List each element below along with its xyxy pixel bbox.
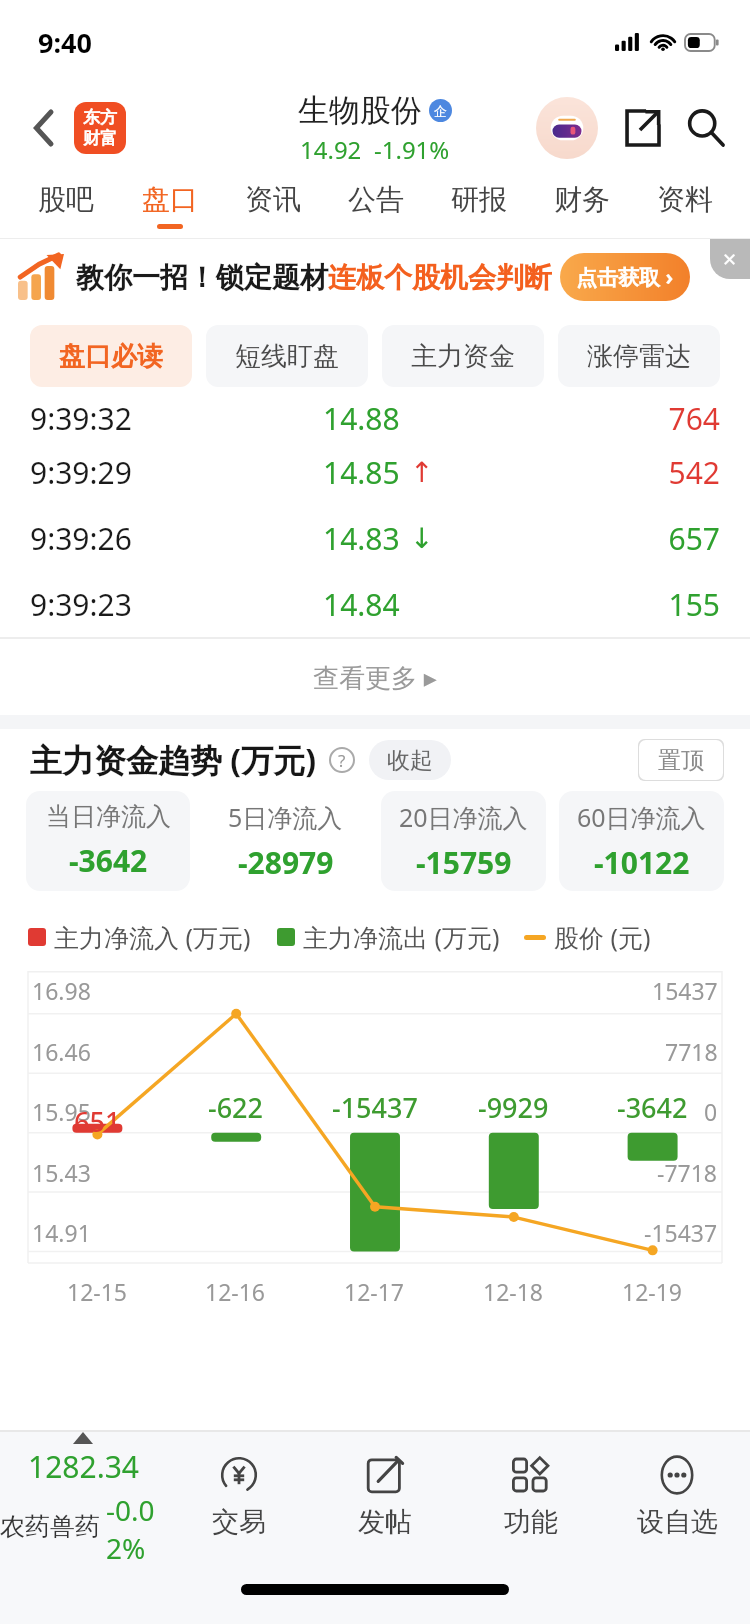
- staticText: 主力资金: [411, 340, 515, 373]
- button[interactable]: 研报: [427, 172, 530, 239]
- staticText: ↑: [410, 456, 428, 489]
- button[interactable]: 发帖: [312, 1432, 458, 1562]
- button[interactable]: 资料: [633, 172, 736, 239]
- button[interactable]: 点击获取 ›: [560, 253, 690, 301]
- staticText: 60日净流入: [577, 800, 706, 834]
- staticText: 发帖: [358, 1505, 412, 1539]
- button[interactable]: 置顶: [638, 739, 724, 781]
- button[interactable]: 交易: [166, 1432, 312, 1562]
- staticText: 研报: [451, 182, 507, 217]
- staticText: 155: [490, 584, 720, 625]
- button[interactable]: 当日净流入: [26, 791, 190, 891]
- staticText: -1.91%: [374, 133, 450, 166]
- staticText: ✕: [722, 249, 738, 270]
- staticText: 东方: [83, 107, 117, 128]
- staticText: 14.92: [300, 133, 362, 166]
- button[interactable]: 教你一招！锁定题材: [18, 239, 736, 315]
- button[interactable]: 资讯: [221, 172, 324, 239]
- button[interactable]: 主力资金: [382, 325, 544, 387]
- staticText: -622: [208, 1089, 263, 1126]
- button[interactable]: 盘口必读: [30, 325, 192, 387]
- staticText: 当日净流入: [46, 801, 171, 832]
- staticText: 股价 (元): [554, 920, 651, 954]
- staticText: -0.02%: [106, 1491, 166, 1562]
- staticText: -15437: [332, 1089, 418, 1126]
- staticText: 12-18: [483, 1276, 544, 1307]
- staticText: 短线盯盘: [235, 340, 339, 373]
- staticText: 14.91: [32, 1217, 91, 1248]
- staticText: 交易: [212, 1505, 266, 1539]
- staticText: 涨停雷达: [587, 340, 691, 373]
- staticText: -10122: [594, 842, 690, 883]
- staticText: -3642: [69, 840, 148, 881]
- staticText: -28979: [238, 842, 334, 883]
- staticText: -7718: [657, 1157, 718, 1188]
- staticText: ?: [338, 749, 346, 772]
- staticText: 9:39:26: [30, 518, 260, 559]
- button[interactable]: 60日净流入: [559, 791, 724, 891]
- button[interactable]: 功能: [458, 1432, 604, 1562]
- staticText: 9:40: [38, 24, 92, 61]
- button[interactable]: Back: [22, 106, 66, 150]
- button[interactable]: 查看更多 ▸: [0, 639, 750, 715]
- button[interactable]: Help: [327, 745, 357, 775]
- button[interactable]: 1282.34: [0, 1432, 166, 1562]
- button[interactable]: AI assistant: [536, 97, 598, 159]
- button[interactable]: 9:39:26: [0, 505, 750, 571]
- staticText: 企: [434, 103, 447, 119]
- staticText: 15.95: [32, 1096, 91, 1127]
- staticText: 14.84: [323, 584, 400, 625]
- staticText: 12-17: [344, 1276, 405, 1307]
- staticText: -3642: [617, 1089, 688, 1126]
- staticText: 公告: [348, 182, 404, 217]
- staticText: 生物股份: [298, 91, 422, 130]
- staticText: ↓: [410, 522, 428, 555]
- button[interactable]: 公告: [324, 172, 427, 239]
- staticText: 主力净流入 (万元): [54, 920, 251, 954]
- staticText: 9:39:23: [30, 584, 260, 625]
- staticText: 16.46: [32, 1036, 91, 1067]
- button[interactable]: 收起: [369, 740, 451, 780]
- staticText: 股吧: [38, 182, 94, 217]
- staticText: 点击获取 ›: [576, 263, 674, 292]
- staticText: 财务: [554, 182, 610, 217]
- button[interactable]: 20日净流入: [381, 791, 546, 891]
- button[interactable]: Share: [616, 102, 668, 154]
- button[interactable]: 短线盯盘: [206, 325, 368, 387]
- button[interactable]: 东方财富: [74, 102, 126, 154]
- staticText: -9929: [478, 1089, 549, 1126]
- staticText: 盘口: [142, 182, 198, 217]
- staticText: 12-16: [205, 1276, 266, 1307]
- staticText: 收起: [387, 746, 433, 775]
- staticText: 设自选: [637, 1505, 718, 1539]
- button[interactable]: Close ad: [710, 239, 750, 279]
- button[interactable]: Search: [678, 100, 734, 156]
- button[interactable]: 设自选: [604, 1432, 750, 1562]
- staticText: 14.83: [323, 518, 400, 559]
- staticText: 主力净流出 (万元): [303, 920, 500, 954]
- button[interactable]: 财务: [530, 172, 633, 239]
- button[interactable]: 涨停雷达: [558, 325, 720, 387]
- staticText: 9:39:32: [30, 398, 260, 439]
- staticText: 9:39:29: [30, 452, 260, 493]
- button[interactable]: 5日净流入: [203, 791, 368, 891]
- button[interactable]: 股吧: [14, 172, 118, 239]
- staticText: 657: [490, 518, 720, 559]
- staticText: 7718: [665, 1036, 718, 1067]
- staticText: 财富: [83, 128, 117, 149]
- staticText: 连板个股机会判断: [328, 260, 552, 295]
- staticText: 资讯: [245, 182, 301, 217]
- button[interactable]: 9:39:32: [0, 397, 750, 439]
- staticText: 15.43: [32, 1157, 91, 1188]
- staticText: 教你一招！锁定题材: [76, 260, 328, 295]
- staticText: 12-15: [67, 1276, 128, 1307]
- button[interactable]: 盘口: [118, 172, 221, 239]
- staticText: 置顶: [658, 746, 704, 775]
- staticText: 盘口必读: [59, 340, 163, 373]
- staticText: 查看更多 ▸: [313, 659, 437, 695]
- button[interactable]: 9:39:29: [0, 439, 750, 505]
- staticText: 主力资金趋势 (万元): [30, 738, 317, 782]
- staticText: 16.98: [32, 975, 91, 1006]
- button[interactable]: 9:39:23: [0, 571, 750, 637]
- staticText: 12-19: [622, 1276, 683, 1307]
